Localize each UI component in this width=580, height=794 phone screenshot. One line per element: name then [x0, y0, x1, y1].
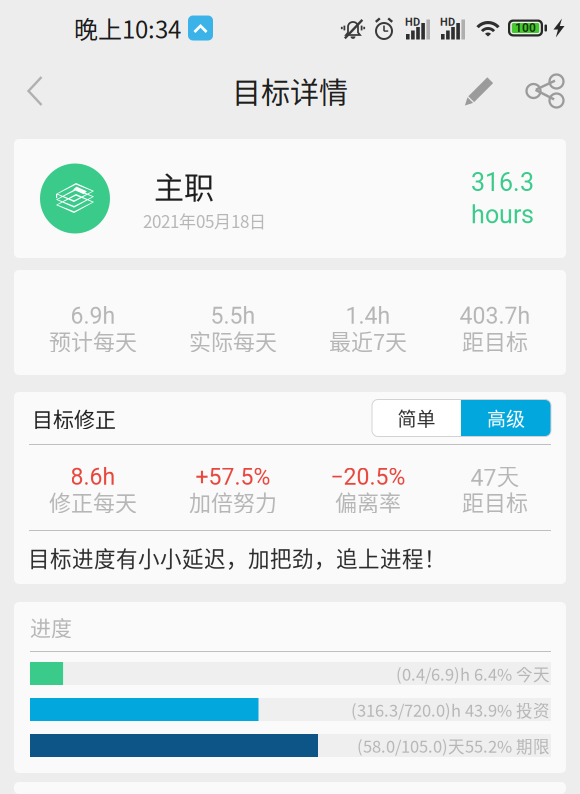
staticText: (58.0/105.0)天55.2% 期限 — [357, 734, 550, 757]
staticText: 实际每天 — [189, 325, 277, 356]
staticText: 简单 — [397, 404, 435, 432]
staticText: 目标修正 — [32, 403, 116, 433]
staticText: 6.9h — [70, 302, 115, 329]
staticText: 316.3 — [471, 168, 534, 197]
staticText: 8.6h — [70, 463, 115, 490]
staticText: 距目标 — [462, 486, 528, 517]
staticText: (316.3/720.0)h 43.9% 投资 — [351, 698, 550, 721]
staticText: 高级 — [487, 404, 525, 432]
button[interactable]: 简单 — [372, 399, 461, 436]
button[interactable]: Back — [0, 56, 70, 126]
staticText: 403.7h — [459, 302, 530, 329]
staticText: (0.4/6.9)h 6.4% 今天 — [396, 662, 550, 685]
staticText: 修正每天 — [49, 486, 137, 517]
button[interactable]: 高级 — [461, 399, 551, 436]
staticText: 100 — [515, 21, 536, 35]
staticText: 5.5h — [210, 302, 255, 329]
staticText: 进度 — [30, 611, 72, 642]
button[interactable]: Share — [510, 56, 580, 126]
staticText: 最近7天 — [329, 325, 407, 356]
staticText: 目标进度有小小延迟，加把劲，追上进程！ — [28, 542, 446, 573]
staticText: 加倍努力 — [189, 486, 277, 517]
staticText: 预计每天 — [49, 325, 137, 356]
staticText: HD — [440, 15, 455, 28]
staticText: 偏离率 — [335, 486, 401, 517]
staticText: +57.5% — [195, 463, 270, 490]
staticText: HD — [405, 15, 420, 28]
button[interactable]: Edit — [448, 56, 510, 126]
staticText: hours — [471, 200, 534, 229]
staticText: 晚上10:34 — [74, 11, 181, 45]
staticText: 1.4h — [345, 302, 390, 329]
staticText: 主职 — [154, 164, 214, 207]
staticText: 目标详情 — [232, 70, 348, 112]
staticText: −20.5% — [330, 463, 405, 490]
staticText: 2021年05月18日 — [143, 208, 266, 233]
staticText: 距目标 — [462, 325, 528, 356]
staticText: 47天 — [470, 462, 519, 491]
